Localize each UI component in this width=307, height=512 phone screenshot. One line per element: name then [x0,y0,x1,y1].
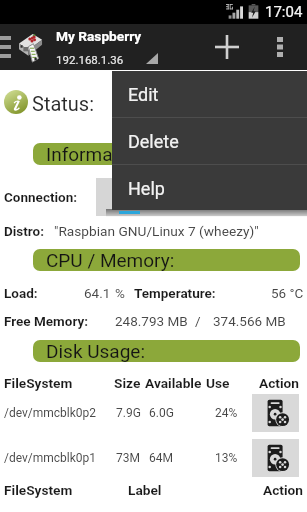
staticText: 64.1 [84,285,111,301]
staticText: 73M [116,451,140,465]
staticText: 64M [149,451,173,465]
button[interactable]: Add [203,24,251,70]
button[interactable]: Delete [112,118,307,164]
staticText: My Raspberry [56,28,142,44]
staticText: "Raspbian GNU/Linux 7 (wheezy)" [54,223,259,239]
button[interactable]: Help [112,165,307,211]
staticText: Status: [32,92,95,115]
staticText: CPU / Memory: [46,249,175,271]
button[interactable]: Disk action [252,394,299,432]
staticText: Use [206,375,230,391]
staticText: Free Memory: [4,313,89,329]
staticText: Disk Usage: [46,340,146,362]
staticText: Help [128,178,165,199]
staticText: Edit [128,84,159,105]
staticText: 17:04 [265,3,303,21]
staticText: 7.9G [116,406,141,420]
staticText: Distro: [4,223,45,239]
staticText: Connection: [4,189,78,205]
staticText: / [195,313,201,329]
button[interactable]: Disk action [252,439,299,477]
button[interactable]: CPU / Memory: [33,249,300,271]
staticText: Action [259,375,300,391]
button[interactable]: Edit [112,71,307,117]
staticText: Size [114,375,141,391]
staticText: Available [145,375,202,391]
button[interactable]: Information: [33,143,300,165]
staticText: 13% [215,451,238,465]
staticText: 56 °C [271,285,304,301]
staticText: /dev/mmcblk0p1 [4,451,97,465]
staticText: Label [128,482,162,498]
staticText: Temperature: [134,285,216,301]
staticText: Information: [46,143,150,165]
staticText: % [115,285,125,301]
staticText: 192.168.1.36 [56,53,124,66]
staticText: Delete [128,131,179,152]
staticText: 374.566 MB [213,313,286,329]
button[interactable]: Disk Usage: [33,340,300,362]
button[interactable]: More options [264,24,296,70]
staticText: FileSystem [4,375,73,391]
staticText: Load: [4,285,38,301]
staticText: 24% [215,406,238,420]
staticText: Action [263,482,304,498]
staticText: FileSystem [4,482,73,498]
staticText: 6.0G [149,406,174,420]
staticText: /dev/mmcblk0p2 [4,406,97,420]
staticText: 248.793 MB [115,313,188,329]
button[interactable]: Navigate up [0,24,307,70]
